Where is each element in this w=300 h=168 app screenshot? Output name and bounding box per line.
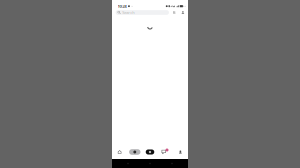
button[interactable]: Filters bbox=[172, 9, 177, 15]
staticText: Search bbox=[122, 10, 134, 15]
button[interactable]: Home bbox=[112, 145, 127, 159]
button[interactable]: Search bbox=[116, 10, 169, 15]
staticText: 10:24 bbox=[118, 3, 127, 9]
button[interactable]: Discover bbox=[127, 145, 142, 159]
button[interactable]: Create bbox=[142, 145, 158, 159]
button[interactable]: Messages bbox=[158, 145, 173, 159]
button[interactable]: Profile bbox=[173, 145, 188, 159]
button[interactable]: Account bbox=[180, 9, 186, 15]
